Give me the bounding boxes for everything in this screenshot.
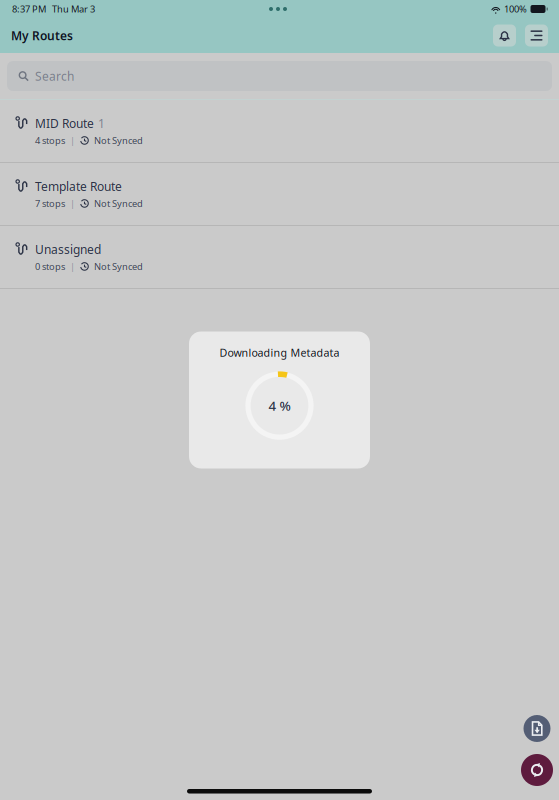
button[interactable]: Menu (525, 24, 548, 46)
staticText: MID Route (35, 115, 94, 131)
staticText: 0 stops (35, 260, 65, 273)
staticText: | (70, 197, 75, 210)
staticText: Downloading Metadata (219, 345, 339, 360)
staticText: My Routes (11, 27, 73, 43)
button[interactable]: Sync (521, 754, 553, 786)
button[interactable]: MID Route (0, 100, 559, 162)
button[interactable]: Unassigned (0, 226, 559, 288)
staticText: Template Route (35, 178, 122, 194)
staticText: | (70, 134, 75, 147)
staticText: Not Synced (94, 260, 143, 273)
staticText: 4 % (268, 397, 290, 414)
staticText: 8:37 PM (12, 3, 46, 15)
staticText: 100% (504, 3, 527, 15)
button[interactable]: Notifications (493, 24, 516, 46)
staticText: Thu Mar 3 (46, 3, 95, 15)
staticText: Search (35, 68, 74, 84)
button[interactable]: Template Route (0, 163, 559, 225)
staticText: 7 stops (35, 197, 65, 210)
staticText: Not Synced (94, 134, 143, 147)
staticText: 1 (98, 115, 105, 131)
button[interactable]: Download file (523, 715, 550, 742)
staticText: 4 stops (35, 134, 65, 147)
staticText: | (70, 260, 75, 273)
staticText: Not Synced (94, 197, 143, 210)
staticText: Unassigned (35, 241, 101, 257)
